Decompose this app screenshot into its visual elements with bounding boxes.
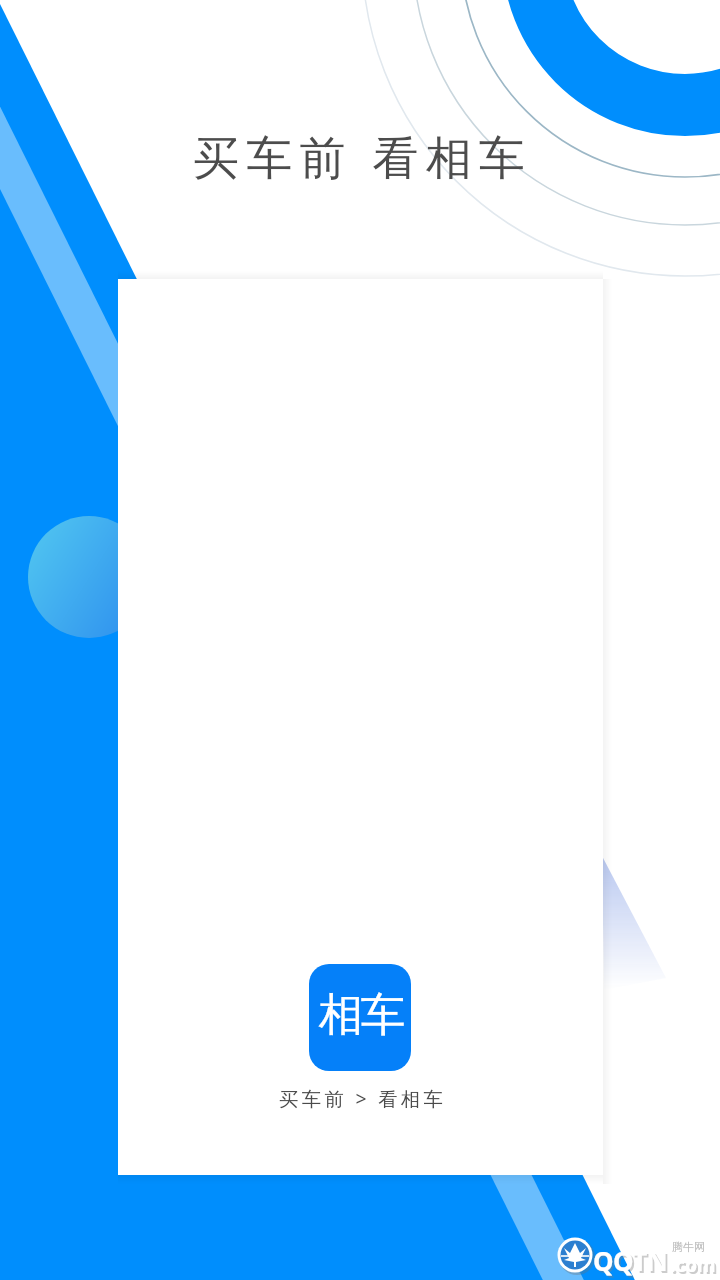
staticText: 买车前 > 看相车: [279, 1085, 447, 1111]
staticText: .com: [670, 1252, 716, 1278]
staticText: .com: [672, 1254, 718, 1280]
staticText: 相车: [320, 987, 404, 1044]
staticText: 腾牛网: [672, 1240, 705, 1254]
staticText: 买车前 看相车: [193, 125, 533, 188]
button[interactable]: App logo 相车: [309, 964, 411, 1071]
staticText: QQTN: [595, 1245, 670, 1280]
staticText: QQTN: [593, 1243, 668, 1278]
